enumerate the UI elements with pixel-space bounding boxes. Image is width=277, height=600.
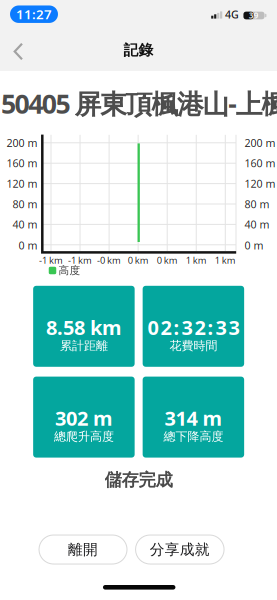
- staticText: 314 m: [164, 405, 222, 431]
- staticText: 累計距離: [60, 338, 108, 353]
- staticText: 離開: [68, 540, 98, 558]
- staticText: 80 m: [12, 197, 37, 211]
- staticText: 120 m: [6, 176, 37, 191]
- staticText: 50405 屏東頂楓港山-上楓: [1, 86, 277, 121]
- staticText: 0 km: [128, 254, 149, 266]
- staticText: 總下降高度: [163, 429, 223, 444]
- staticText: 分享成就: [150, 540, 210, 558]
- staticText: 39: [249, 10, 259, 21]
- staticText: 40 m: [12, 217, 37, 231]
- staticText: 高度: [58, 264, 80, 277]
- staticText: 11:27: [16, 5, 52, 23]
- staticText: 160 m: [244, 156, 275, 170]
- staticText: 儲存完成: [104, 469, 172, 491]
- staticText: 花費時間: [169, 338, 217, 353]
- staticText: 8.58 km: [46, 314, 122, 341]
- staticText: 120 m: [244, 176, 275, 191]
- staticText: 4G: [225, 7, 239, 21]
- staticText: 0 m: [18, 238, 37, 252]
- staticText: 記錄: [123, 41, 153, 59]
- staticText: 1 km: [215, 254, 236, 266]
- staticText: 80 m: [244, 197, 269, 211]
- staticText: 160 m: [6, 156, 37, 170]
- button[interactable]: 分享成就: [136, 535, 224, 564]
- staticText: -1 km: [68, 254, 92, 266]
- staticText: 總爬升高度: [54, 429, 114, 444]
- staticText: 40 m: [244, 217, 269, 231]
- staticText: 0 km: [157, 254, 178, 266]
- staticText: 200 m: [244, 136, 275, 150]
- button[interactable]: 離開: [39, 535, 127, 564]
- staticText: 0 2 : 3 2 : 3 3: [147, 314, 239, 341]
- staticText: 1 km: [186, 254, 207, 266]
- staticText: 302 m: [55, 405, 113, 431]
- staticText: 200 m: [6, 136, 37, 150]
- staticText: -0 km: [97, 254, 121, 266]
- staticText: 0 m: [244, 238, 263, 252]
- button[interactable]: [11, 41, 25, 61]
- staticText: -1 km: [39, 254, 63, 266]
